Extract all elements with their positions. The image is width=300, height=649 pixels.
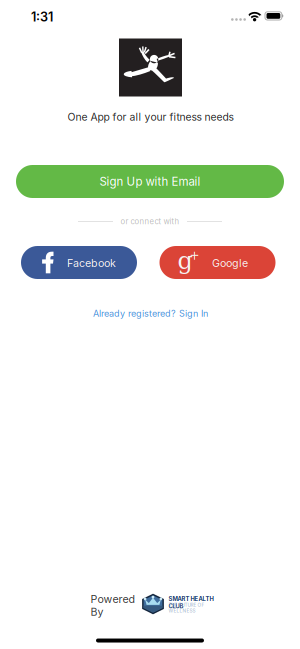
staticText: or connect with [120,217,179,226]
button[interactable]: g [159,246,275,279]
staticText: Sign Up with Email [99,175,200,188]
staticText: Already registered? Sign In [93,308,208,319]
staticText: 1:31 [31,9,53,25]
button[interactable]: Facebook [21,246,137,279]
button[interactable]: Already registered? Sign In [85,305,215,321]
staticText: One App for all your fitness needs [67,111,233,123]
staticText: THE FUTURE OF WELLNESS [168,602,204,614]
button[interactable]: Sign Up with Email [16,165,284,198]
staticText: Powered By [90,593,135,618]
staticText: SMART HEALTH CLUB [168,595,213,610]
staticText: g [177,247,192,274]
staticText: Google [212,256,248,269]
staticText: Facebook [67,256,116,269]
staticText: + [189,249,199,263]
